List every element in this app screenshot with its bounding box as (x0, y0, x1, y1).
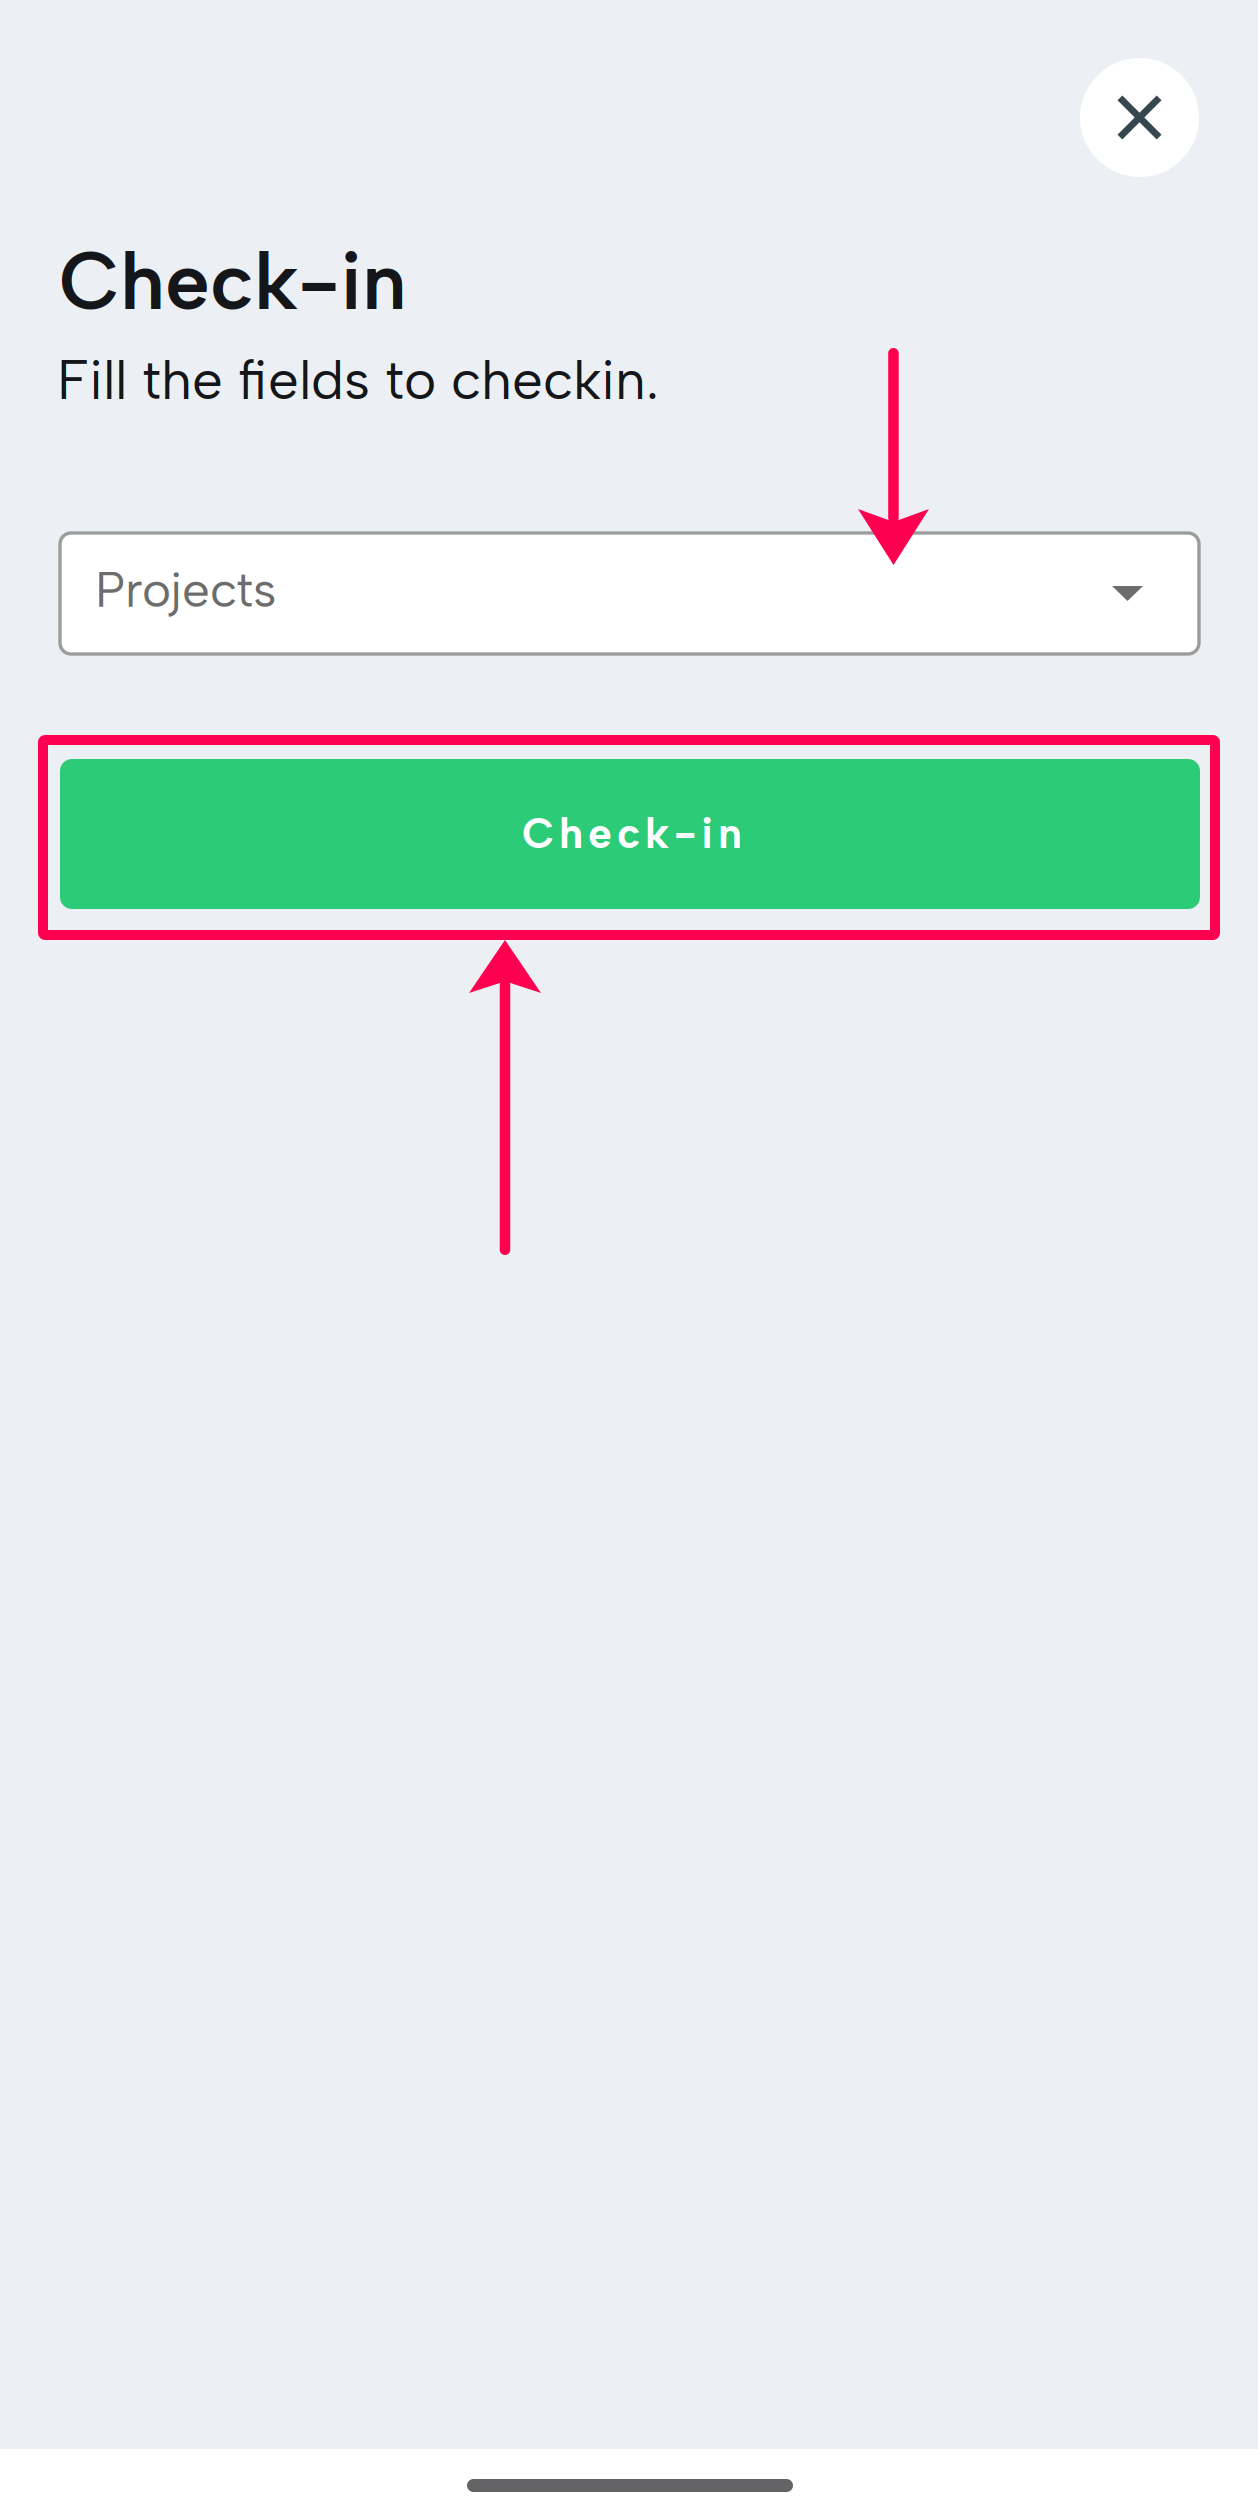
staticText: Check-in (522, 807, 742, 859)
staticText: Fill the fields to checkin. (57, 347, 659, 413)
button[interactable]: Check-in (60, 759, 1200, 909)
staticText: Projects (95, 560, 276, 619)
staticText: Check-in (59, 233, 407, 329)
button[interactable]: Close (1080, 58, 1199, 177)
button[interactable]: Projects (60, 533, 1199, 654)
